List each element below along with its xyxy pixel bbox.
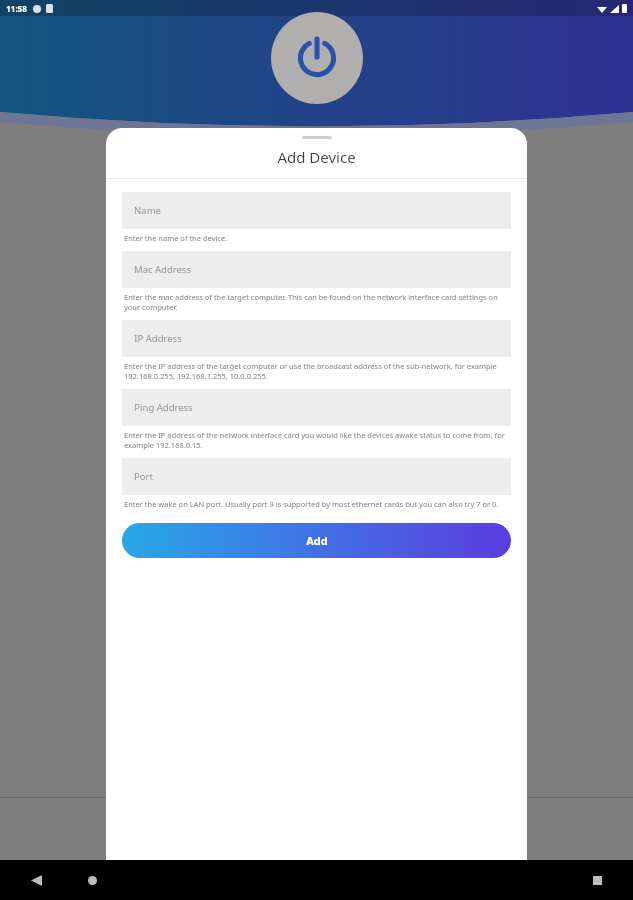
staticText: Enter the mac address of the target comp… (124, 292, 511, 312)
staticText: Enter the IP address of the network inte… (124, 430, 511, 450)
button[interactable]: Power (271, 12, 363, 104)
button[interactable]: Back (22, 866, 50, 894)
staticText: Mac Address (134, 263, 191, 276)
button[interactable]: Ping Address (122, 389, 511, 426)
staticText: Enter the IP address of the target compu… (124, 361, 511, 381)
staticText: 11:58 (6, 3, 27, 14)
button[interactable]: Home (78, 866, 106, 894)
button[interactable]: Port (122, 458, 511, 495)
button[interactable]: IP Address (122, 320, 511, 357)
button[interactable]: Recent apps (583, 866, 611, 894)
button[interactable]: Mac Address (122, 251, 511, 288)
staticText: Add (306, 533, 328, 548)
staticText: IP Address (134, 332, 182, 345)
staticText: Ping Address (134, 401, 193, 414)
staticText: Name (134, 204, 161, 217)
staticText: Port (134, 470, 153, 483)
staticText: Enter the name of the device. (124, 233, 228, 243)
staticText: Add Device (277, 147, 356, 167)
button[interactable]: Name (122, 192, 511, 229)
staticText: Enter the wake on LAN port. Usually port… (124, 499, 499, 509)
button[interactable]: Add (122, 523, 511, 558)
